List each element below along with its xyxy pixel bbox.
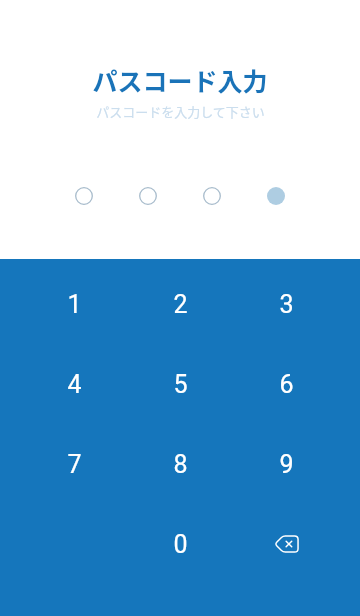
button[interactable]: 0 [127, 504, 233, 584]
staticText: 4 [67, 370, 82, 399]
staticText: 5 [173, 370, 188, 399]
staticText: 3 [279, 290, 294, 319]
staticText: パスコードを入力して下さい [96, 102, 265, 121]
staticText: 2 [173, 290, 188, 319]
staticText: 8 [173, 450, 188, 479]
button[interactable]: Delete [233, 504, 339, 584]
button[interactable]: 1 [22, 264, 127, 344]
button[interactable]: 6 [233, 344, 339, 424]
button[interactable]: 2 [127, 264, 233, 344]
button[interactable]: 5 [127, 344, 233, 424]
staticText: 1 [67, 290, 82, 319]
button[interactable]: 7 [22, 424, 127, 504]
button[interactable]: 9 [233, 424, 339, 504]
staticText: 0 [173, 530, 188, 559]
staticText: パスコード入力 [92, 62, 268, 98]
button[interactable]: 8 [127, 424, 233, 504]
staticText: 9 [279, 450, 294, 479]
button[interactable]: 4 [22, 344, 127, 424]
staticText: 6 [279, 370, 294, 399]
staticText: 7 [67, 450, 82, 479]
button[interactable]: 3 [233, 264, 339, 344]
